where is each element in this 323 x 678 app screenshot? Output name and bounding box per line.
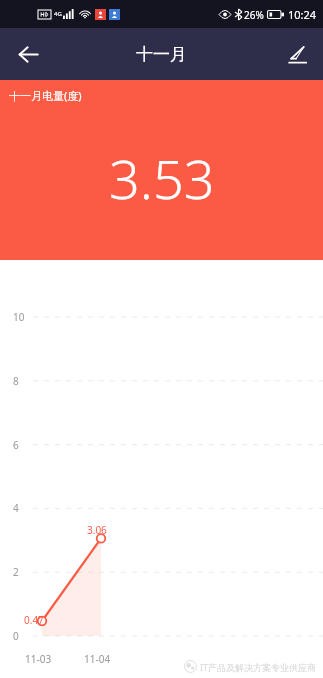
staticText: 11-03 xyxy=(25,652,52,666)
staticText: 8 xyxy=(13,374,19,388)
staticText: 6 xyxy=(13,438,19,452)
staticText: 4G xyxy=(54,10,62,18)
staticText: 0.47 xyxy=(24,613,44,627)
button[interactable]: Back xyxy=(9,35,47,73)
staticText: 10 xyxy=(13,310,25,324)
staticText: 0 xyxy=(13,629,19,643)
staticText: 十一月 xyxy=(136,44,187,65)
staticText: 2 xyxy=(13,565,19,579)
staticText: 3.06 xyxy=(87,523,107,537)
staticText: 十一月电量(度) xyxy=(9,88,82,103)
staticText: 11-04 xyxy=(84,652,111,666)
staticText: 4 xyxy=(13,501,19,515)
button[interactable]: 十一月电量(度) xyxy=(0,80,323,260)
staticText: 26% xyxy=(244,8,264,22)
staticText: 3.53 xyxy=(109,141,215,215)
button[interactable]: Edit xyxy=(278,35,316,73)
staticText: IT产品及解决方案专业供应商 xyxy=(200,661,317,673)
staticText: 10:24 xyxy=(288,7,317,22)
